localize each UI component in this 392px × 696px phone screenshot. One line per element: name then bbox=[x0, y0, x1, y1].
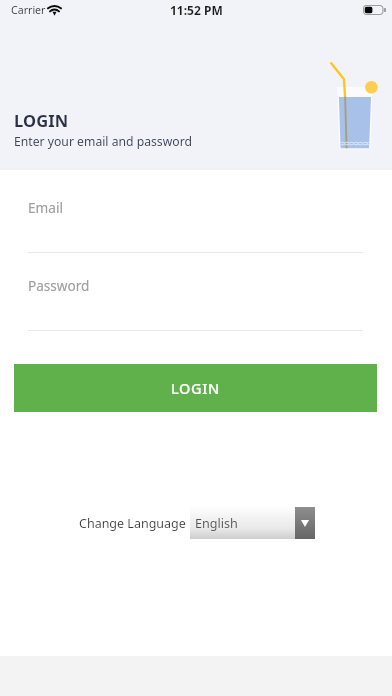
staticText: Enter your email and password bbox=[14, 133, 192, 150]
staticText: 11:52 PM bbox=[170, 2, 223, 18]
button[interactable]: LOGIN bbox=[14, 364, 377, 412]
staticText: Password bbox=[28, 276, 90, 295]
button[interactable]: Select language: English bbox=[190, 507, 315, 539]
staticText: Change Language bbox=[79, 515, 186, 532]
button[interactable]: Email bbox=[28, 198, 363, 253]
staticText: LOGIN bbox=[14, 109, 69, 131]
staticText: Email bbox=[28, 198, 63, 217]
staticText: LOGIN bbox=[171, 378, 220, 398]
button[interactable]: Password bbox=[28, 276, 363, 331]
staticText: English bbox=[195, 515, 238, 532]
staticText: Carrier bbox=[11, 3, 46, 17]
